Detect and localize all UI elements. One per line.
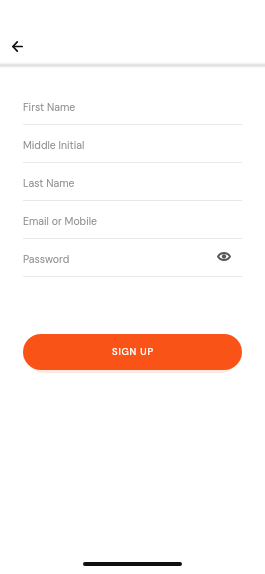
staticText: Password xyxy=(23,253,70,267)
staticText: SIGN UP xyxy=(112,346,154,358)
button[interactable]: Back xyxy=(4,33,30,59)
button[interactable]: Middle Initial xyxy=(23,125,242,163)
button[interactable]: SIGN UP xyxy=(23,334,242,370)
staticText: Middle Initial xyxy=(23,139,85,153)
staticText: First Name xyxy=(23,101,76,115)
button[interactable]: Show password xyxy=(215,247,233,265)
staticText: Email or Mobile xyxy=(23,215,98,229)
staticText: Last Name xyxy=(23,177,75,191)
button[interactable]: First Name xyxy=(23,87,242,125)
button[interactable]: Password xyxy=(23,239,242,277)
button[interactable]: Last Name xyxy=(23,163,242,201)
button[interactable]: Email or Mobile xyxy=(23,201,242,239)
